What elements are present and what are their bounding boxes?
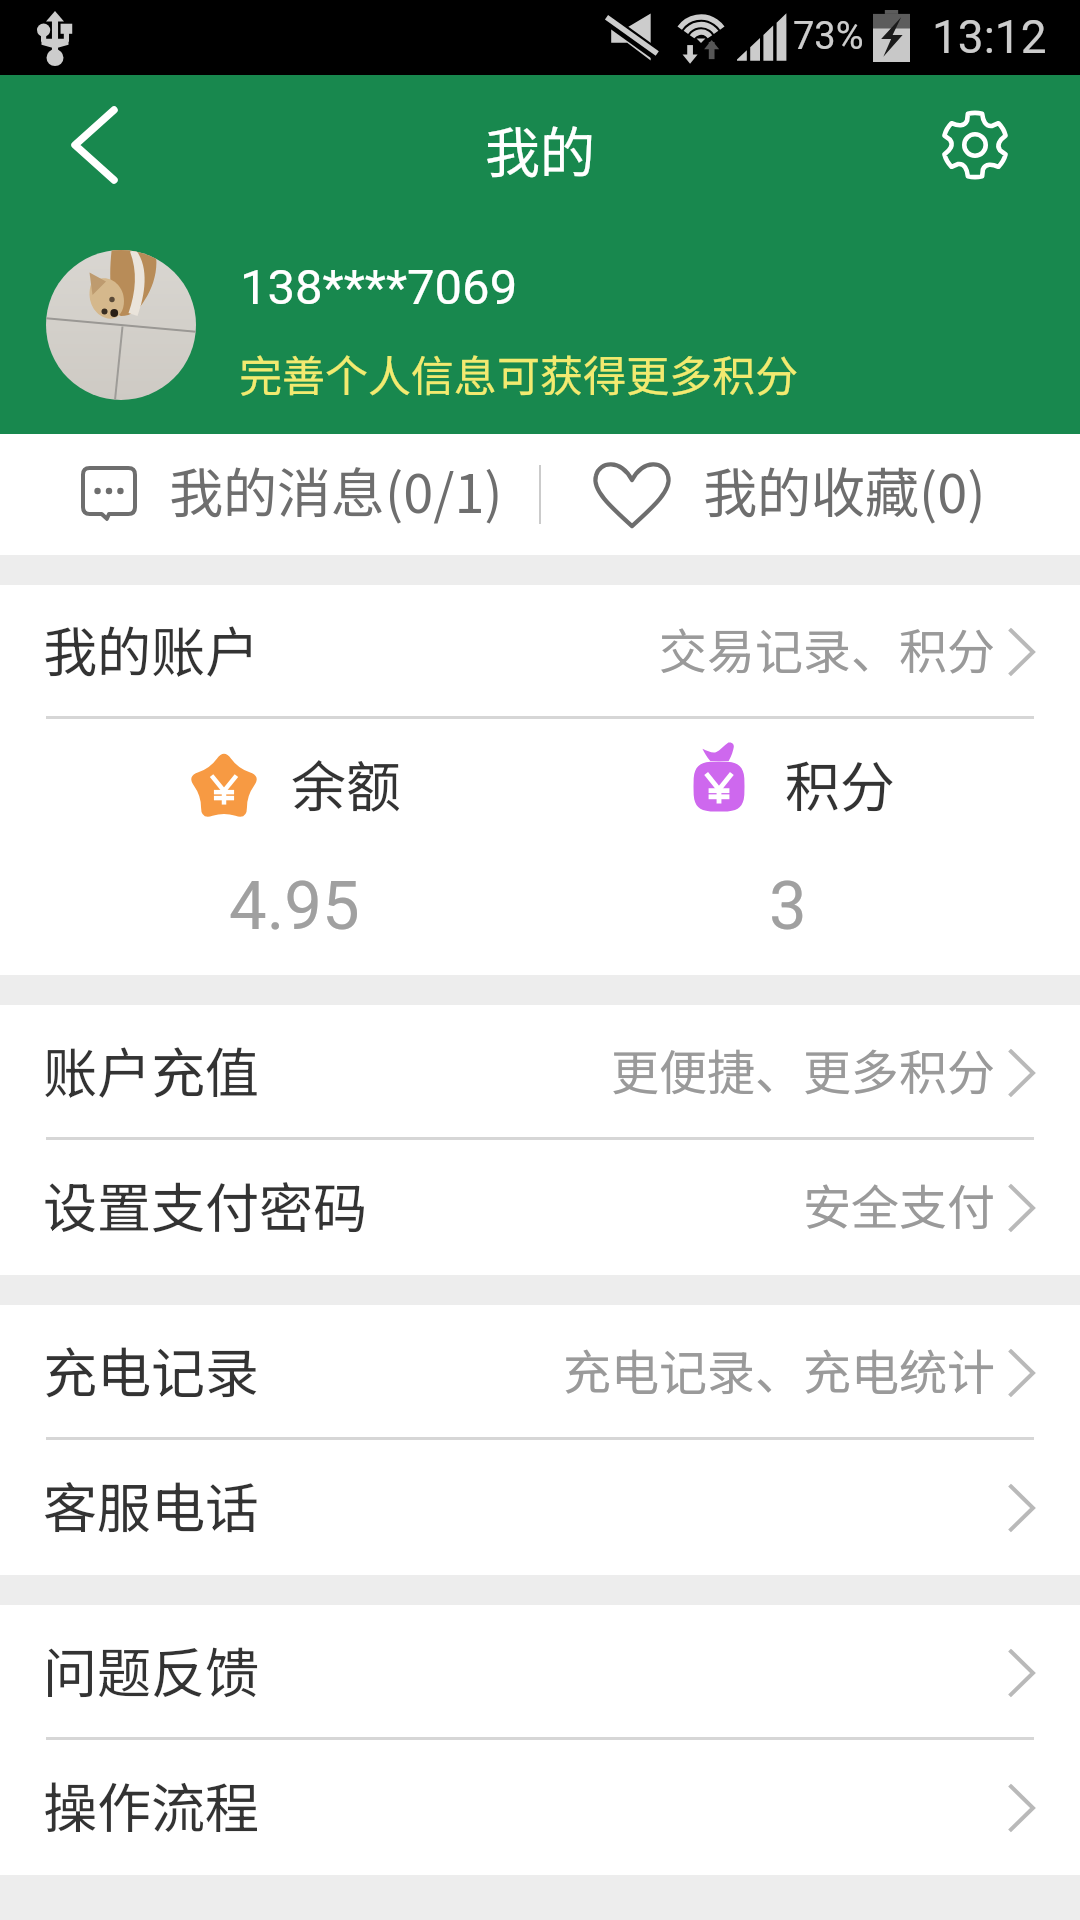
- staticText: 4.95: [229, 867, 360, 946]
- staticText: 我的: [485, 109, 596, 189]
- staticText: 我的收藏(0): [703, 450, 986, 528]
- button[interactable]: 客服电话: [0, 1440, 1080, 1575]
- staticText: 73%: [793, 14, 864, 59]
- button[interactable]: 余额: [0, 719, 540, 975]
- button[interactable]: 操作流程: [0, 1740, 1080, 1875]
- button[interactable]: Back: [0, 80, 130, 210]
- staticText: 余额: [291, 743, 402, 823]
- staticText: 充电记录、充电统计: [563, 1334, 996, 1404]
- button[interactable]: 我的消息(0/1): [0, 434, 540, 555]
- button[interactable]: 充电记录: [0, 1305, 1080, 1440]
- button[interactable]: 138****7069: [0, 215, 1080, 434]
- button[interactable]: 我的收藏(0): [540, 434, 1080, 555]
- staticText: 更便捷、更多积分: [611, 1034, 996, 1104]
- staticText: 138****7069: [240, 259, 518, 316]
- staticText: 3: [769, 867, 807, 946]
- staticText: 我的消息(0/1): [169, 450, 503, 528]
- staticText: 完善个人信息可获得更多积分: [239, 342, 798, 404]
- button[interactable]: Settings: [950, 80, 1080, 210]
- staticText: 积分: [785, 743, 896, 823]
- button[interactable]: 问题反馈: [0, 1605, 1080, 1740]
- button[interactable]: 账户充值: [0, 1005, 1080, 1140]
- staticText: 安全支付: [803, 1169, 996, 1239]
- staticText: 我的账户: [43, 609, 259, 687]
- button[interactable]: 积分: [540, 719, 1080, 975]
- button[interactable]: 我的账户: [0, 585, 1080, 719]
- staticText: 操作流程: [43, 1765, 259, 1843]
- staticText: 账户充值: [43, 1030, 259, 1108]
- staticText: 设置支付密码: [43, 1165, 367, 1243]
- staticText: 13:12: [932, 10, 1047, 64]
- staticText: 问题反馈: [43, 1630, 259, 1708]
- staticText: 客服电话: [43, 1465, 259, 1543]
- staticText: 交易记录、积分: [659, 613, 996, 683]
- button[interactable]: 设置支付密码: [0, 1140, 1080, 1275]
- staticText: 充电记录: [43, 1330, 259, 1408]
